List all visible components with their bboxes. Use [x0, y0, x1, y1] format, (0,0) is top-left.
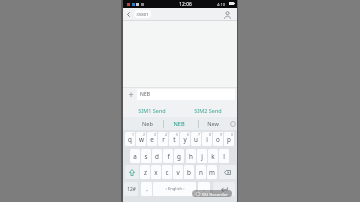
staticText: 35801: [136, 11, 149, 17]
button[interactable]: [123, 8, 133, 20]
button[interactable]: [125, 165, 139, 179]
button[interactable]: o: [213, 132, 223, 146]
staticText: q: [128, 135, 132, 144]
button[interactable]: k: [208, 149, 218, 163]
button[interactable]: p: [224, 132, 234, 146]
button[interactable]: NEB: [137, 89, 235, 100]
staticText: +: [128, 88, 134, 100]
button[interactable]: m: [207, 165, 217, 179]
button[interactable]: b: [184, 165, 194, 179]
button[interactable]: r: [158, 132, 168, 146]
button[interactable]: u: [191, 132, 201, 146]
button[interactable]: ‹ English ›: [153, 182, 196, 196]
staticText: v: [176, 168, 180, 177]
staticText: r: [162, 135, 165, 144]
staticText: e: [150, 135, 154, 144]
staticText: i: [206, 135, 208, 144]
button[interactable]: h: [186, 149, 196, 163]
staticText: s: [144, 152, 148, 161]
staticText: 8: [209, 132, 211, 137]
staticText: w: [139, 135, 144, 144]
button[interactable]: New: [199, 117, 227, 130]
button[interactable]: s: [141, 149, 151, 163]
button[interactable]: ,: [141, 182, 152, 196]
staticText: 4:10: [217, 2, 225, 7]
staticText: 1: [132, 132, 134, 137]
staticText: t: [173, 135, 176, 144]
staticText: m: [209, 168, 215, 177]
button[interactable]: v: [173, 165, 183, 179]
staticText: 6: [187, 132, 189, 137]
staticText: New: [207, 120, 219, 128]
button[interactable]: g: [174, 149, 184, 163]
staticText: h: [189, 152, 193, 161]
staticText: p: [227, 135, 231, 144]
staticText: y: [183, 135, 187, 144]
button[interactable]: i: [202, 132, 212, 146]
button[interactable]: 12#: [124, 182, 138, 196]
button[interactable]: [222, 10, 233, 19]
staticText: z: [144, 168, 147, 177]
button[interactable]: l: [219, 149, 229, 163]
staticText: d: [155, 152, 159, 161]
staticText: n: [199, 168, 203, 177]
button[interactable]: d: [152, 149, 162, 163]
staticText: SIM1 Send: [138, 107, 166, 114]
staticText: 12:06: [179, 1, 192, 8]
staticText: x: [154, 168, 158, 177]
staticText: 2: [143, 132, 145, 137]
button[interactable]: z: [140, 165, 150, 179]
button[interactable]: [219, 165, 236, 179]
staticText: NEB: [140, 91, 150, 98]
staticText: j: [201, 152, 203, 161]
staticText: NEB: [173, 120, 185, 128]
button[interactable]: e: [147, 132, 157, 146]
staticText: c: [165, 168, 169, 177]
staticText: f: [167, 152, 170, 161]
button[interactable]: c: [162, 165, 172, 179]
staticText: ,: [146, 185, 148, 193]
button[interactable]: x: [151, 165, 161, 179]
staticText: 0: [231, 132, 233, 137]
staticText: 3: [154, 132, 156, 137]
button[interactable]: .: [198, 182, 210, 196]
staticText: 7: [198, 132, 200, 137]
button[interactable]: y: [180, 132, 190, 146]
button[interactable]: j: [197, 149, 207, 163]
staticText: k: [211, 152, 215, 161]
button[interactable]: n: [196, 165, 206, 179]
staticText: 5: [176, 132, 178, 137]
staticText: SIM2 Send: [194, 107, 222, 114]
button[interactable]: SIM2 Send: [193, 104, 223, 116]
button[interactable]: w: [136, 132, 146, 146]
button[interactable]: [213, 182, 235, 196]
staticText: .: [203, 185, 205, 193]
button[interactable]: SIM1 Send: [137, 104, 167, 116]
staticText: Neb: [142, 120, 153, 128]
staticText: g: [177, 152, 181, 161]
button[interactable]: t: [169, 132, 179, 146]
staticText: u: [194, 135, 198, 144]
button[interactable]: q: [125, 132, 135, 146]
staticText: ‹ English ›: [165, 186, 185, 192]
staticText: 9: [220, 132, 222, 137]
staticText: 12#: [127, 186, 136, 193]
button[interactable]: f: [163, 149, 173, 163]
staticText: 4: [165, 132, 167, 137]
button[interactable]: Neb: [132, 117, 162, 130]
staticText: b: [187, 168, 191, 177]
staticText: DU Recorder: [202, 191, 228, 197]
button[interactable]: a: [130, 149, 140, 163]
button[interactable]: NEB: [164, 117, 194, 130]
staticText: o: [216, 135, 220, 144]
button[interactable]: +: [125, 87, 136, 100]
staticText: l: [223, 152, 225, 161]
staticText: a: [133, 152, 137, 161]
